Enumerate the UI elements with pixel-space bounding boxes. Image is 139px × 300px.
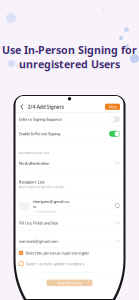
staticText: Enforce Signing Sequence bbox=[19, 116, 62, 122]
staticText: Next bbox=[108, 104, 116, 109]
button[interactable]: Fill Use Fields and Sign bbox=[15, 216, 123, 230]
staticText: 2/4 Add Signers bbox=[27, 103, 64, 110]
staticText: Add Recipient bbox=[58, 280, 81, 285]
button[interactable]: someone@gmail.com bbox=[15, 235, 123, 247]
button[interactable]: Add Recipient bbox=[46, 280, 92, 286]
staticText: Signer receives update mandatory bbox=[25, 261, 84, 266]
staticText: No Authentication bbox=[19, 160, 49, 166]
staticText: Select this person as in-person signer bbox=[25, 250, 89, 256]
button[interactable]: Select this person as in-person signer bbox=[15, 248, 123, 258]
button[interactable]: Signer receives update mandatory bbox=[15, 258, 123, 269]
staticText: Add recipients and their details bbox=[19, 185, 64, 189]
button[interactable]: No Authentication bbox=[15, 155, 123, 172]
staticText: +17566056569 bbox=[33, 210, 57, 213]
staticText: Use In-Person Signing for bbox=[2, 43, 137, 57]
button[interactable]: Next bbox=[105, 104, 120, 110]
staticText: Recipient List bbox=[19, 179, 45, 185]
staticText: someone@gmail.com bbox=[19, 239, 58, 244]
staticText: shortyam@gmail.com bbox=[33, 199, 70, 209]
button[interactable]: Back bbox=[19, 102, 25, 111]
staticText: unregistered Users bbox=[19, 57, 120, 71]
staticText: Enable In-Person Signing bbox=[19, 131, 60, 136]
button[interactable]: Enforce Signing Sequence bbox=[15, 112, 123, 126]
staticText: AUTHENTICATION CODE bbox=[19, 151, 49, 155]
staticText: Fill Use Fields and Sign bbox=[19, 220, 58, 225]
button[interactable]: Enable In-Person Signing bbox=[15, 126, 123, 141]
